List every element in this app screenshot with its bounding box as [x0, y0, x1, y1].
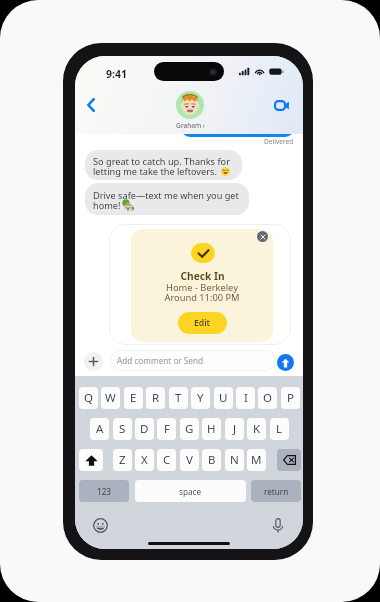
button[interactable]: K [247, 418, 266, 440]
staticText: W [105, 390, 116, 406]
button[interactable]: Y [191, 387, 210, 409]
staticText: A [96, 421, 104, 437]
staticText: 123 [97, 486, 112, 497]
staticText: O [263, 390, 272, 406]
button[interactable]: X [135, 449, 154, 471]
staticText: Z [119, 452, 126, 468]
staticText: P [287, 390, 294, 406]
button[interactable]: C [157, 449, 176, 471]
button[interactable]: Send [277, 354, 294, 371]
button[interactable]: Q [79, 387, 98, 409]
button[interactable]: I [236, 387, 255, 409]
button[interactable]: Edit [178, 312, 227, 334]
button[interactable]: Dictation [270, 517, 286, 533]
staticText: G [185, 421, 194, 437]
staticText: H [207, 421, 216, 437]
button[interactable]: F [157, 418, 176, 440]
button[interactable]: N [225, 449, 244, 471]
staticText: Graham › [176, 121, 205, 130]
button[interactable]: Add attachment [84, 352, 103, 371]
button[interactable]: return [251, 480, 301, 502]
staticText: M [251, 452, 262, 468]
staticText: F [164, 421, 170, 437]
staticText: E [130, 390, 137, 406]
staticText: T [175, 390, 182, 406]
button[interactable]: H [202, 418, 221, 440]
button[interactable]: B [202, 449, 221, 471]
button[interactable]: D [135, 418, 154, 440]
staticText: R [152, 390, 160, 406]
staticText: Delivered [264, 137, 294, 146]
staticText: K [253, 421, 261, 437]
button[interactable]: E [124, 387, 143, 409]
staticText: Home - Berkeley [166, 281, 238, 294]
button[interactable]: Add comment or Send [110, 350, 276, 371]
button[interactable]: 123 [79, 480, 129, 502]
button[interactable]: Back [79, 93, 103, 117]
staticText: S [119, 421, 126, 437]
button[interactable]: W [101, 387, 120, 409]
staticText: I [244, 390, 248, 406]
button[interactable]: Shift [79, 449, 103, 471]
button[interactable]: Backspace [277, 449, 301, 471]
button[interactable] [181, 121, 294, 137]
button[interactable]: Graham › [166, 91, 214, 130]
staticText: J [233, 421, 237, 437]
staticText: D [140, 421, 149, 437]
staticText: Drive safe—text me when you get home! [93, 189, 239, 212]
staticText: Y [197, 390, 204, 406]
button[interactable]: Z [113, 449, 132, 471]
staticText: space [179, 486, 202, 497]
staticText: L [276, 421, 283, 437]
staticText: X [141, 452, 148, 468]
button[interactable]: A [90, 418, 109, 440]
staticText: Around 11:00 PM [164, 291, 240, 304]
button[interactable]: V [180, 449, 199, 471]
button[interactable]: S [113, 418, 132, 440]
button[interactable]: M [247, 449, 266, 471]
button[interactable]: Emoji keyboard [92, 517, 108, 533]
staticText: Q [84, 390, 93, 406]
button[interactable]: J [225, 418, 244, 440]
button[interactable]: FaceTime video call [268, 93, 296, 117]
button[interactable]: T [169, 387, 188, 409]
staticText: B [208, 452, 216, 468]
staticText: Check In [180, 269, 225, 283]
staticText: So great to catch up. Thanks for letting… [93, 155, 230, 178]
button[interactable]: P [281, 387, 300, 409]
staticText: U [219, 390, 228, 406]
staticText: Add comment or Send [117, 355, 204, 366]
button[interactable]: R [146, 387, 165, 409]
staticText: V [186, 452, 193, 468]
staticText: N [230, 452, 239, 468]
staticText: return [264, 486, 289, 497]
button[interactable]: So great to catch up. Thanks for letting… [85, 150, 242, 180]
button[interactable]: L [270, 418, 289, 440]
button[interactable]: U [214, 387, 233, 409]
staticText: Edit [194, 317, 211, 329]
button[interactable]: O [258, 387, 277, 409]
staticText: 9:41 [106, 67, 127, 81]
button[interactable]: space [135, 480, 246, 502]
button[interactable]: Drive safe—text me when you get home! [85, 183, 249, 215]
button[interactable]: G [180, 418, 199, 440]
button[interactable] [109, 224, 291, 345]
button[interactable]: Close [257, 231, 268, 242]
staticText: C [163, 452, 171, 468]
